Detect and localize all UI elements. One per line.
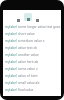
staticText: mylabel [5, 46, 17, 50]
staticText: small value ab [18, 81, 40, 85]
button[interactable]: mylabel [3, 72, 61, 79]
staticText: mylabel [5, 81, 17, 85]
staticText: mylabel [5, 39, 17, 43]
staticText: a medium value x [18, 39, 45, 43]
staticText: mylabel [5, 25, 17, 29]
button[interactable]: mylabel [3, 65, 61, 72]
staticText: mylabel [5, 32, 17, 36]
staticText: short value [18, 32, 35, 36]
staticText: mylabel [5, 74, 17, 78]
staticText: another value [18, 53, 39, 57]
button[interactable]: mylabel [3, 86, 61, 93]
staticText: final value [18, 88, 34, 92]
button[interactable]: mylabel [3, 37, 61, 44]
staticText: some longer value text goes here [18, 25, 61, 29]
button[interactable]: mylabel [3, 23, 61, 30]
staticText: mylabel [5, 67, 17, 71]
button[interactable]: mylabel [3, 79, 61, 86]
staticText: value of item [18, 74, 38, 78]
button[interactable]: mylabel [3, 44, 61, 51]
button[interactable]: mylabel [3, 30, 61, 37]
staticText: some value x [18, 67, 38, 71]
button[interactable]: mylabel [3, 58, 61, 65]
staticText: value here ab [18, 60, 39, 64]
staticText: mylabel [5, 60, 17, 64]
button[interactable]: mylabel [3, 51, 61, 58]
staticText: mylabel [5, 88, 17, 92]
staticText: value text ok [18, 46, 38, 50]
staticText: mylabel [5, 53, 17, 57]
